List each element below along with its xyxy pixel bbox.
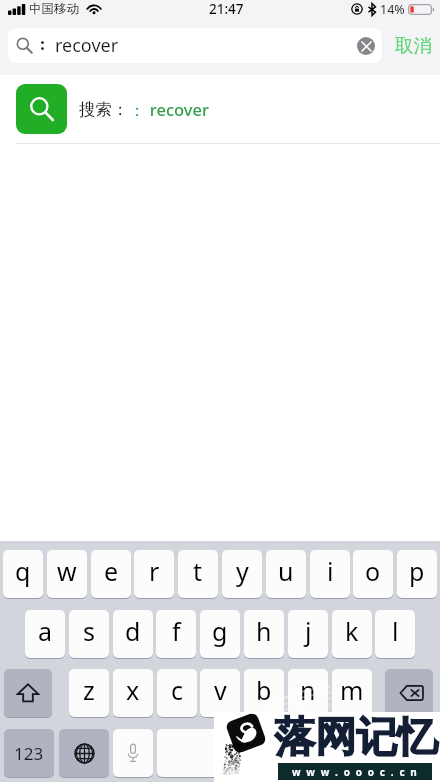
button[interactable]: d bbox=[113, 610, 153, 658]
staticText: 123 bbox=[14, 742, 44, 765]
button[interactable]: o bbox=[353, 550, 393, 598]
staticText: d bbox=[125, 614, 141, 648]
staticText: f bbox=[172, 614, 181, 648]
button[interactable]: q bbox=[3, 550, 43, 598]
button[interactable]: Change keyboard bbox=[59, 729, 109, 777]
staticText: g bbox=[212, 614, 228, 648]
button[interactable]: 123 bbox=[4, 729, 54, 777]
staticText: h bbox=[256, 614, 272, 648]
staticText: x bbox=[126, 673, 140, 707]
staticText: 14% bbox=[380, 1, 405, 18]
button[interactable]: Clear text bbox=[357, 37, 375, 55]
staticText: r bbox=[149, 554, 160, 588]
button[interactable]: h bbox=[244, 610, 284, 658]
button[interactable]: n bbox=[288, 669, 328, 717]
staticText: i bbox=[327, 554, 334, 588]
staticText: e bbox=[104, 554, 119, 588]
button[interactable]: s bbox=[69, 610, 109, 658]
staticText: t bbox=[193, 554, 203, 588]
button[interactable]: y bbox=[222, 550, 262, 598]
staticText: j bbox=[305, 614, 312, 648]
button[interactable]: i bbox=[310, 550, 350, 598]
button[interactable]: Shift bbox=[4, 669, 52, 717]
button[interactable]: recover bbox=[8, 28, 382, 63]
staticText: a bbox=[38, 614, 53, 648]
staticText: s bbox=[83, 614, 95, 648]
staticText: n bbox=[300, 673, 316, 707]
staticText: b bbox=[256, 673, 272, 707]
button[interactable]: e bbox=[91, 550, 131, 598]
staticText: y bbox=[236, 554, 249, 588]
button[interactable]: Space bbox=[157, 729, 347, 777]
button[interactable]: 搜索： bbox=[0, 75, 440, 143]
button[interactable]: b bbox=[244, 669, 284, 717]
staticText: ： recover bbox=[129, 98, 209, 121]
button[interactable]: p bbox=[397, 550, 437, 598]
staticText: q bbox=[15, 554, 31, 588]
staticText: l bbox=[392, 614, 399, 648]
button[interactable]: t bbox=[178, 550, 218, 598]
button[interactable]: m bbox=[332, 669, 372, 717]
staticText: w w w . o o o c . c n bbox=[292, 765, 419, 779]
staticText: v bbox=[214, 673, 227, 707]
button[interactable]: l bbox=[375, 610, 415, 658]
staticText: u bbox=[278, 554, 294, 588]
button[interactable]: z bbox=[69, 669, 109, 717]
button[interactable]: u bbox=[266, 550, 306, 598]
button[interactable]: j bbox=[288, 610, 328, 658]
staticText: 取消 bbox=[395, 34, 432, 57]
staticText: c bbox=[171, 673, 184, 707]
staticText: 落网记忆 bbox=[274, 712, 438, 764]
staticText: 搜索： bbox=[79, 99, 129, 120]
staticText: w bbox=[57, 554, 77, 588]
staticText: o bbox=[365, 554, 381, 588]
staticText: z bbox=[83, 673, 95, 707]
button[interactable]: a bbox=[25, 610, 65, 658]
staticText: k bbox=[345, 614, 359, 648]
staticText: 21:47 bbox=[209, 0, 244, 18]
button[interactable]: Backspace bbox=[385, 669, 433, 717]
button[interactable]: Dictation bbox=[113, 729, 153, 777]
button[interactable]: k bbox=[332, 610, 372, 658]
button[interactable]: w bbox=[47, 550, 87, 598]
button[interactable]: x bbox=[113, 669, 153, 717]
staticText: p bbox=[409, 554, 425, 588]
button[interactable]: c bbox=[157, 669, 197, 717]
staticText: m bbox=[340, 673, 364, 707]
staticText: recover bbox=[55, 33, 119, 58]
button[interactable]: v bbox=[200, 669, 240, 717]
button[interactable]: g bbox=[200, 610, 240, 658]
button[interactable]: 取消 bbox=[386, 28, 440, 63]
button[interactable]: r bbox=[134, 550, 174, 598]
staticText: 中国移动 bbox=[29, 1, 79, 17]
button[interactable]: f bbox=[156, 610, 196, 658]
